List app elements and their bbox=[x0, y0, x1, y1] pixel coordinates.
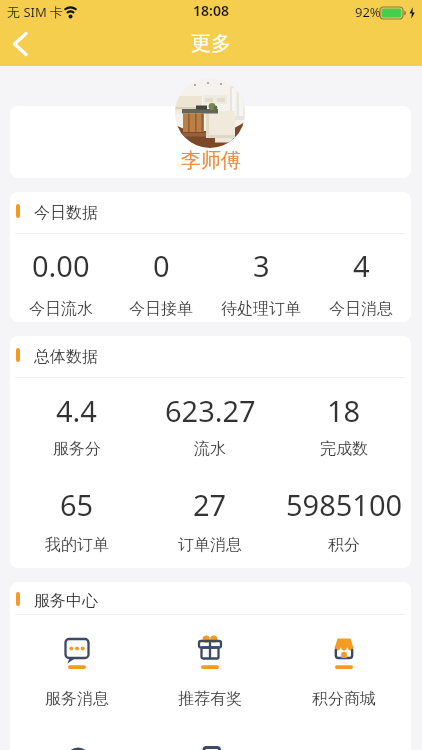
button[interactable] bbox=[10, 106, 411, 178]
staticText: 4.4 bbox=[56, 391, 97, 430]
button[interactable]: 18 bbox=[277, 391, 411, 430]
staticText: 今日接单 bbox=[129, 299, 193, 319]
button[interactable]: 4.4 bbox=[10, 391, 143, 430]
staticText: 待处理订单 bbox=[221, 299, 301, 319]
staticText: 完成数 bbox=[320, 439, 368, 459]
button[interactable]: 65 bbox=[10, 485, 143, 524]
button[interactable]: 我的订单 bbox=[10, 535, 143, 555]
button[interactable]: 待处理订单 bbox=[211, 299, 311, 319]
staticText: 18 bbox=[327, 391, 361, 430]
staticText: 4 bbox=[353, 246, 370, 285]
button[interactable]: 今日流水 bbox=[10, 299, 111, 319]
button[interactable]: 今日接单 bbox=[111, 299, 211, 319]
button[interactable]: 流水 bbox=[143, 439, 277, 459]
button[interactable]: 5985100 bbox=[277, 485, 411, 524]
button[interactable]: 0 bbox=[111, 246, 211, 285]
staticText: 订单消息 bbox=[178, 535, 242, 555]
staticText: 623.27 bbox=[165, 391, 256, 430]
staticText: 服务分 bbox=[53, 439, 101, 459]
button[interactable]: 27 bbox=[143, 485, 277, 524]
staticText: 5985100 bbox=[286, 485, 403, 524]
staticText: 推荐有奖 bbox=[178, 689, 242, 709]
staticText: 0 bbox=[153, 246, 170, 285]
staticText: 我的订单 bbox=[45, 535, 109, 555]
staticText: 服务中心 bbox=[34, 591, 98, 611]
staticText: 0.00 bbox=[32, 246, 90, 285]
button[interactable]: 服务分 bbox=[10, 439, 143, 459]
button[interactable]: 0.00 bbox=[10, 246, 111, 285]
button[interactable]: 积分商城 bbox=[277, 634, 411, 709]
button[interactable]: 订单消息 bbox=[143, 535, 277, 555]
staticText: 积分商城 bbox=[312, 689, 376, 709]
button[interactable]: 积分 bbox=[277, 535, 411, 555]
staticText: 65 bbox=[60, 485, 94, 524]
staticText: 今日消息 bbox=[329, 299, 393, 319]
button[interactable]: 服务消息 bbox=[10, 634, 143, 709]
staticText: 今日数据 bbox=[34, 203, 98, 223]
staticText: 总体数据 bbox=[34, 347, 98, 367]
button[interactable]: 3 bbox=[211, 246, 311, 285]
button[interactable]: 完成数 bbox=[277, 439, 411, 459]
staticText: 李师傅 bbox=[0, 148, 422, 173]
button[interactable]: 623.27 bbox=[143, 391, 277, 430]
staticText: 服务消息 bbox=[45, 689, 109, 709]
staticText: 92% bbox=[355, 3, 381, 21]
staticText: 更多 bbox=[0, 31, 422, 56]
staticText: 3 bbox=[253, 246, 270, 285]
staticText: 无 SIM 卡 bbox=[7, 3, 64, 21]
button[interactable] bbox=[4, 27, 38, 61]
staticText: 流水 bbox=[194, 439, 226, 459]
staticText: 今日流水 bbox=[29, 299, 93, 319]
staticText: 18:08 bbox=[0, 1, 422, 20]
button[interactable]: 4 bbox=[311, 246, 411, 285]
button[interactable]: 今日消息 bbox=[311, 299, 411, 319]
staticText: 积分 bbox=[328, 535, 360, 555]
button[interactable]: 推荐有奖 bbox=[143, 634, 277, 709]
staticText: 27 bbox=[193, 485, 227, 524]
